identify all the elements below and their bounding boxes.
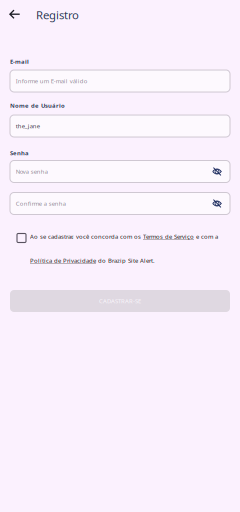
staticText: CADASTRAR-SE (99, 297, 141, 305)
staticText: Confirme a senha (16, 199, 66, 207)
staticText: Ao se cadastrar, você concorda com os Te… (30, 232, 218, 240)
staticText: Nome de Usuário (10, 101, 65, 109)
staticText: Informe um E-mail válido (16, 77, 88, 85)
staticText: E-mail (10, 57, 29, 65)
staticText: the_jane (16, 122, 40, 130)
button[interactable]: Accept terms (17, 233, 26, 242)
staticText: Nova senha (16, 167, 48, 175)
button[interactable]: Show password (208, 192, 226, 214)
button[interactable]: Back (4, 3, 26, 25)
staticText: Política de Privacidade do Brazip Site A… (30, 256, 155, 264)
staticText: Senha (10, 149, 29, 157)
button[interactable]: Show password (208, 160, 226, 182)
staticText: Registro (36, 7, 79, 23)
